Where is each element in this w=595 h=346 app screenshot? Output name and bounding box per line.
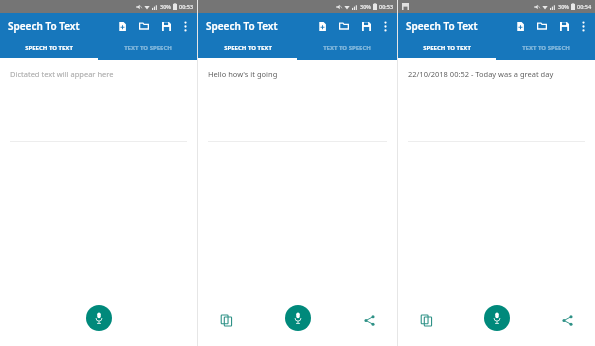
button[interactable]: More options (178, 19, 192, 33)
staticText: SPEECH TO TEXT (25, 44, 73, 52)
staticText: Speech To Text (406, 19, 478, 33)
staticText: Hello how's it going (208, 69, 278, 79)
staticText: Dictated text will appear here (10, 69, 114, 79)
staticText: 30% (558, 3, 569, 10)
staticText: 00:54 (577, 3, 592, 10)
staticText: 22/10/2018 00:52 - Today was a great day (408, 69, 554, 79)
button[interactable]: Dictated text will appear here (10, 69, 187, 142)
button[interactable]: 22/10/2018 00:52 - Today was a great day (408, 69, 585, 142)
staticText: 30% (360, 3, 371, 10)
button[interactable]: Hello how's it going (208, 69, 387, 142)
button[interactable]: Record speech (484, 305, 510, 331)
button[interactable]: New file (114, 18, 130, 34)
staticText: 00:53 (379, 3, 394, 10)
button[interactable]: Open folder (136, 18, 152, 34)
button[interactable]: Share (557, 310, 577, 330)
staticText: SPEECH TO TEXT (423, 44, 471, 52)
button[interactable]: TEXT TO SPEECH (496, 38, 595, 58)
button[interactable]: SPEECH TO TEXT (198, 38, 297, 58)
button[interactable]: More options (576, 19, 590, 33)
button[interactable]: Record speech (86, 305, 112, 331)
button[interactable]: Save (158, 18, 174, 34)
button[interactable]: TEXT TO SPEECH (98, 38, 197, 58)
button[interactable]: SPEECH TO TEXT (0, 38, 98, 58)
button[interactable]: Open folder (336, 18, 352, 34)
button[interactable]: Save (358, 18, 374, 34)
button[interactable]: Copy (416, 310, 436, 330)
button[interactable]: TEXT TO SPEECH (297, 38, 397, 58)
button[interactable]: New file (314, 18, 330, 34)
button[interactable]: New file (512, 18, 528, 34)
button[interactable]: SPEECH TO TEXT (398, 38, 496, 58)
staticText: Speech To Text (206, 19, 278, 33)
staticText: SPEECH TO TEXT (224, 44, 272, 52)
staticText: TEXT TO SPEECH (522, 44, 570, 52)
button[interactable]: Share (359, 310, 379, 330)
button[interactable]: Open folder (534, 18, 550, 34)
staticText: Speech To Text (8, 19, 80, 33)
staticText: 30% (160, 3, 171, 10)
button[interactable]: Copy (216, 310, 236, 330)
button[interactable]: Save (556, 18, 572, 34)
button[interactable]: Record speech (285, 305, 311, 331)
staticText: TEXT TO SPEECH (323, 44, 371, 52)
staticText: 00:53 (179, 3, 194, 10)
staticText: TEXT TO SPEECH (124, 44, 172, 52)
button[interactable]: More options (378, 19, 392, 33)
